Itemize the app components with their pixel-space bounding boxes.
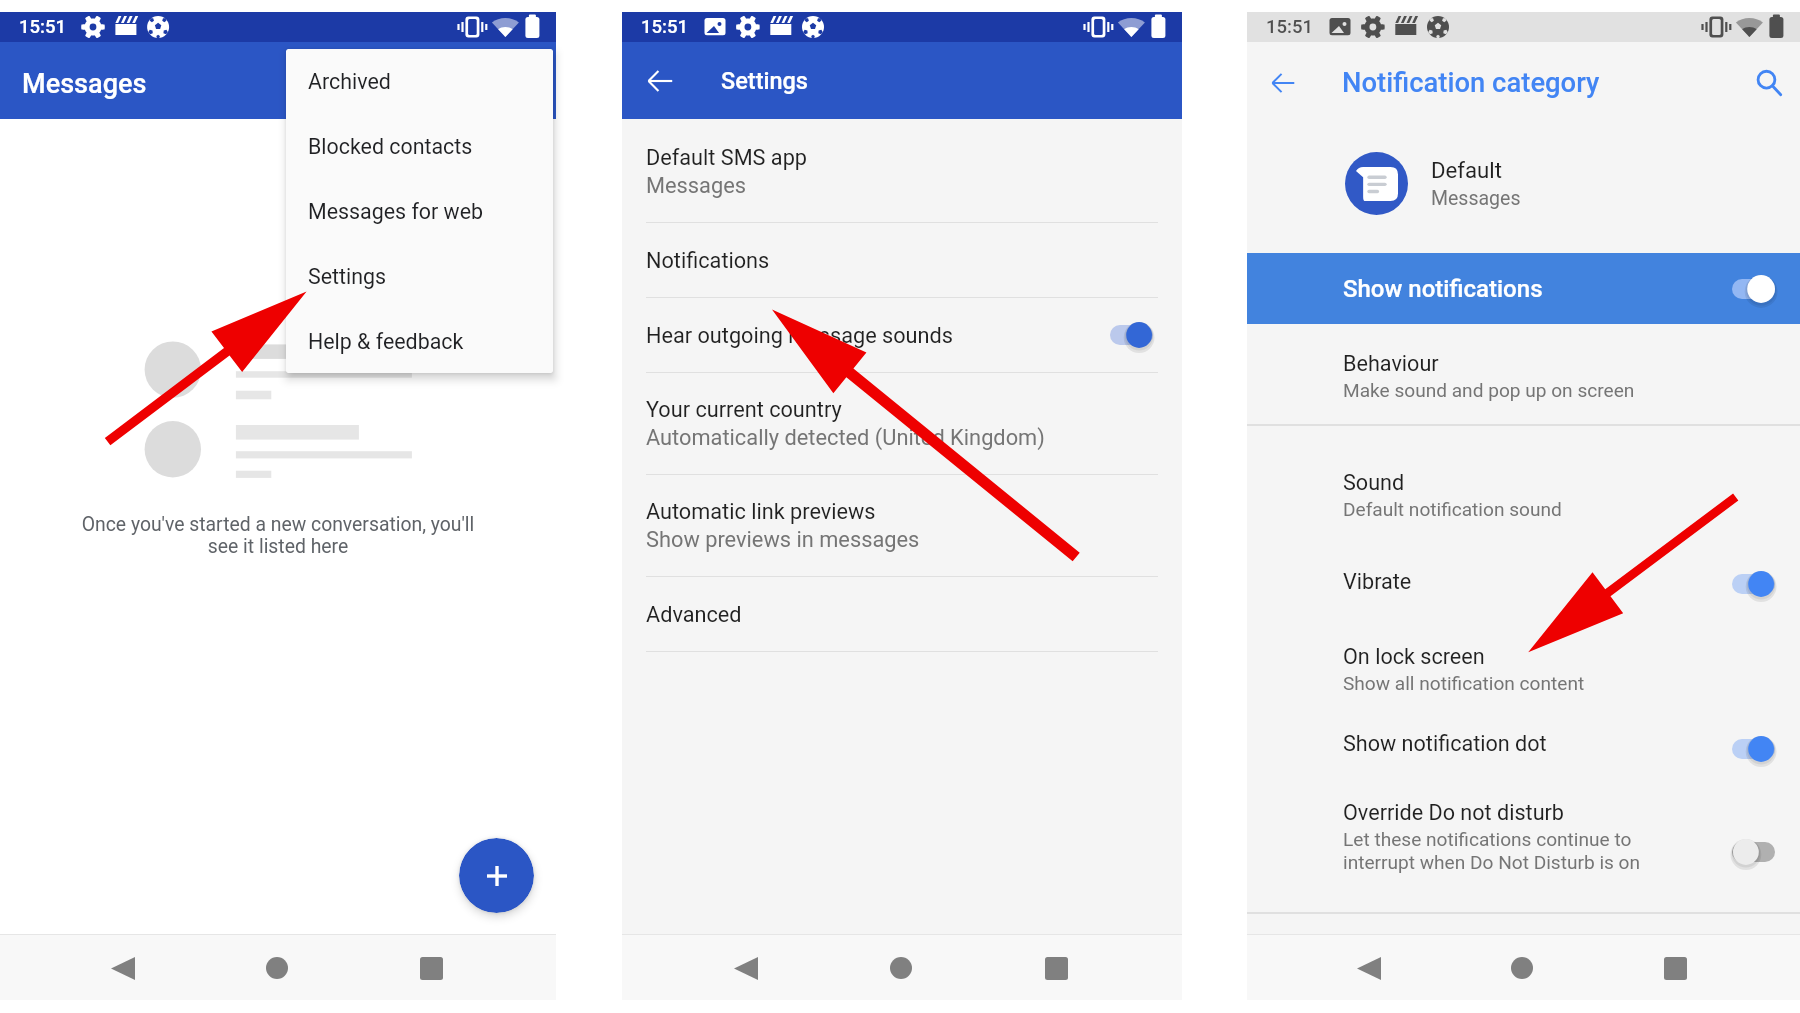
staticText: Advanced [646,602,742,627]
button[interactable]: Recent apps [1646,939,1704,997]
staticText: Sound [1343,470,1405,495]
staticText: Messages for web [308,199,484,224]
button[interactable]: Settings [286,244,553,309]
staticText: On lock screen [1343,644,1485,669]
staticText: Automatically detected (United Kingdom) [646,425,1045,451]
staticText: Hear outgoing message sounds [646,323,953,348]
button[interactable]: Start new conversation [459,838,534,913]
staticText: Messages [1431,187,1521,210]
staticText: Your current country [646,397,842,422]
staticText: Help & feedback [308,329,464,354]
staticText: Default [1431,157,1502,183]
staticText: Default notification sound [1343,498,1562,520]
button[interactable]: Vibrate [1247,541,1800,627]
staticText: Settings [721,67,809,95]
staticText: Show previews in messages [646,527,920,553]
staticText: Once you've started a new conversation, … [14,513,542,558]
staticText: Behaviour [1343,351,1439,376]
staticText: 15:51 [19,16,66,38]
button[interactable]: Blocked contacts [286,114,553,179]
staticText: Blocked contacts [308,134,473,159]
button[interactable]: Navigate up [1263,63,1303,103]
button[interactable]: Show notification dot [1247,707,1800,791]
button[interactable]: Back [717,939,775,997]
button[interactable]: Home [872,939,930,997]
button[interactable]: Help & feedback [286,309,553,373]
button[interactable]: Show notifications [1247,253,1800,324]
button[interactable]: Home [248,939,306,997]
staticText: Archived [308,69,391,94]
button[interactable]: Navigate up [638,59,682,103]
staticText: Show notifications [1343,275,1730,303]
button[interactable]: Hear outgoing message sounds [622,298,1182,372]
button[interactable]: Default SMS app [622,121,1182,222]
button[interactable]: Search [1749,63,1789,103]
button[interactable]: Recent apps [402,939,460,997]
staticText: Messages [22,68,147,100]
staticText: 15:51 [1266,16,1313,38]
button[interactable]: Messages for web [286,179,553,244]
button[interactable]: Archived [286,49,553,114]
button[interactable]: Advanced [622,577,1182,651]
button[interactable]: Notifications [622,223,1182,297]
staticText: Messages [646,173,746,199]
staticText: Default SMS app [646,145,807,170]
staticText: Settings [308,264,387,289]
button[interactable]: Automatic link previews [622,475,1182,576]
staticText: Override Do not disturb [1343,800,1564,825]
staticText: Automatic link previews [646,499,876,524]
staticText: Let these notifications continue to inte… [1343,828,1641,874]
button[interactable]: Recent apps [1027,939,1085,997]
button[interactable]: Home [1493,939,1551,997]
button[interactable]: Behaviour [1247,324,1800,424]
staticText: 15:51 [641,16,688,38]
staticText: Show all notification content [1343,672,1585,694]
button[interactable]: On lock screen [1247,627,1800,707]
staticText: Make sound and pop up on screen [1343,379,1635,401]
button[interactable]: Override Do not disturb [1247,791,1800,912]
staticText: Notifications [646,248,770,273]
button[interactable]: Back [94,939,152,997]
button[interactable]: Back [1340,939,1398,997]
staticText: Vibrate [1343,569,1412,594]
button[interactable]: Sound [1247,426,1800,541]
staticText: Notification category [1342,67,1600,99]
button[interactable]: Your current country [622,373,1182,474]
staticText: Show notification dot [1343,731,1547,756]
